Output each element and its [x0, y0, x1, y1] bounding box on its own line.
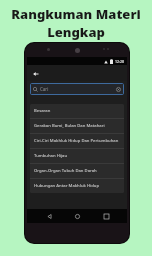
button[interactable]: Clear search: [115, 86, 121, 92]
staticText: Lengkap: [47, 23, 105, 41]
staticText: Hubungan Antar Makhluk Hidup: [34, 183, 100, 189]
button[interactable]: Hubungan Antar Makhluk Hidup: [30, 179, 124, 193]
staticText: 12:28: [115, 59, 124, 64]
button[interactable]: Back: [30, 68, 41, 79]
button[interactable]: Tumbuhan Hijau: [30, 149, 124, 163]
staticText: Rangkuman Materi: [11, 5, 141, 23]
button[interactable]: Besaran: [30, 104, 124, 118]
button[interactable]: Back: [42, 209, 56, 223]
button[interactable]: Home: [70, 209, 84, 223]
staticText: Gerakan Bumi, Bulan Dan Matahari: [34, 123, 105, 129]
button[interactable]: Ciri-Ciri Makhluk Hidup Dan Pertumbuhan: [30, 134, 124, 148]
staticText: Cari: [40, 86, 49, 92]
staticText: Ciri-Ciri Makhluk Hidup Dan Pertumbuhan: [34, 138, 119, 144]
button[interactable]: Cari: [30, 83, 124, 95]
button[interactable]: Recent apps: [99, 209, 113, 223]
staticText: Organ-Organ Tubuh Dan Darah: [34, 168, 97, 174]
staticText: Tumbuhan Hijau: [34, 153, 68, 159]
button[interactable]: Organ-Organ Tubuh Dan Darah: [30, 164, 124, 178]
button[interactable]: Gerakan Bumi, Bulan Dan Matahari: [30, 119, 124, 133]
staticText: Besaran: [34, 108, 51, 114]
